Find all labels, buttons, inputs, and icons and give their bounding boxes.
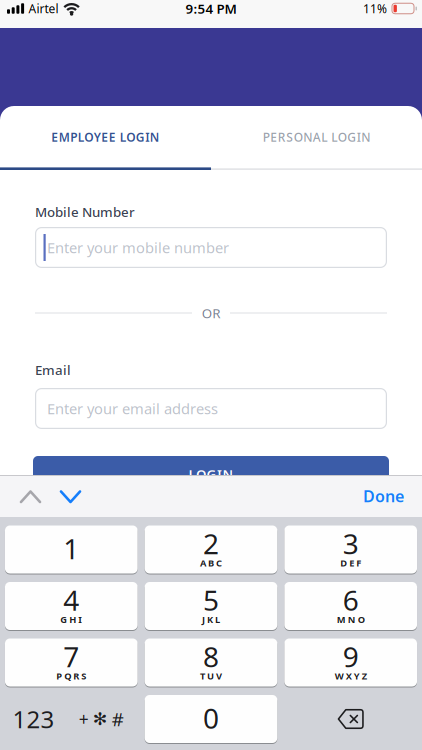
button[interactable]: Delete xyxy=(284,694,417,743)
staticText: 3 xyxy=(343,525,359,562)
staticText: PERSONAL LOGIN xyxy=(263,129,370,145)
button[interactable]: Enter your email address xyxy=(35,388,387,429)
staticText: 0 xyxy=(203,699,219,737)
button[interactable]: 2 xyxy=(145,525,277,574)
staticText: OR xyxy=(202,304,220,322)
button[interactable]: 6 xyxy=(284,581,417,630)
button[interactable]: 7 xyxy=(5,638,138,687)
staticText: 9:54 PM xyxy=(185,0,236,17)
staticText: Enter your email address xyxy=(47,399,218,418)
button[interactable]: 1 xyxy=(5,525,138,574)
button[interactable]: Enter your mobile number xyxy=(35,227,387,268)
staticText: 6 xyxy=(343,581,359,619)
staticText: D E F xyxy=(340,557,361,569)
staticText: 4 xyxy=(63,581,79,619)
staticText: Airtel xyxy=(29,0,59,16)
button[interactable]: 0 xyxy=(145,694,277,743)
staticText: 123 xyxy=(12,703,54,735)
staticText: 1 xyxy=(63,530,79,567)
staticText: T U V xyxy=(200,670,222,682)
staticText: EMPLOYEE LOGIN xyxy=(51,129,160,145)
button[interactable]: EMPLOYEE LOGIN xyxy=(0,106,211,168)
button[interactable]: More numbers xyxy=(8,699,58,739)
staticText: G H I xyxy=(60,613,82,626)
staticText: P Q R S xyxy=(56,670,86,682)
button[interactable]: 8 xyxy=(145,638,277,687)
button[interactable]: 3 xyxy=(284,525,417,574)
staticText: Done xyxy=(363,485,404,507)
staticText: LOGIN xyxy=(188,465,233,483)
staticText: Mobile Number xyxy=(35,203,135,221)
button[interactable]: 9 xyxy=(284,638,417,687)
staticText: 9 xyxy=(343,638,359,675)
staticText: 2 xyxy=(203,525,219,562)
button[interactable]: Symbols xyxy=(75,703,128,735)
staticText: 5 xyxy=(203,581,219,619)
staticText: M N O xyxy=(337,613,365,626)
staticText: W X Y Z xyxy=(335,670,367,682)
staticText: 11% xyxy=(363,0,387,16)
button[interactable]: PERSONAL LOGIN xyxy=(211,106,422,168)
button[interactable]: Next field xyxy=(51,481,90,512)
staticText: Enter your mobile number xyxy=(47,238,229,257)
button[interactable]: 5 xyxy=(145,581,277,630)
staticText: A B C xyxy=(200,557,222,569)
staticText: # xyxy=(112,707,124,731)
staticText: 7 xyxy=(63,638,79,675)
staticText: + xyxy=(79,707,89,730)
button[interactable]: Previous field xyxy=(11,481,50,512)
staticText: Email xyxy=(35,361,71,379)
button[interactable]: LOGIN xyxy=(33,456,389,501)
button[interactable]: Done xyxy=(355,475,412,517)
staticText: ✻ xyxy=(93,709,108,729)
staticText: 8 xyxy=(203,638,219,675)
staticText: J K L xyxy=(202,613,220,626)
button[interactable]: 4 xyxy=(5,581,138,630)
